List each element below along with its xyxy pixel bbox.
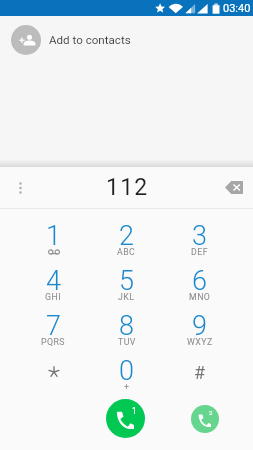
staticText: 112 [106, 174, 149, 201]
staticText: GHI [45, 292, 62, 302]
button[interactable]: 0 [90, 347, 163, 392]
staticText: Add to contacts [49, 33, 131, 47]
button[interactable]: 7 [17, 302, 90, 347]
staticText: 3 [192, 220, 207, 252]
staticText: DEF [191, 247, 208, 257]
staticText: PQRS [41, 337, 66, 347]
staticText: + [124, 382, 130, 392]
staticText: 2 [119, 220, 134, 252]
button[interactable]: Backspace [219, 172, 249, 202]
button[interactable]: Call with SIM 1 [106, 399, 145, 438]
button[interactable]: 1 [17, 212, 90, 257]
button[interactable]: 3 [163, 212, 236, 257]
staticText: WXYZ [187, 337, 213, 347]
button[interactable]: More options [6, 174, 34, 202]
staticText: ABC [117, 247, 136, 257]
staticText: 2 [209, 410, 213, 417]
staticText: 4 [46, 265, 61, 297]
staticText: 7 [46, 310, 61, 342]
staticText: MNO [189, 292, 211, 302]
staticText: 9 [192, 310, 207, 342]
staticText: 6 [192, 265, 207, 297]
button[interactable] [17, 347, 90, 392]
button[interactable]: 8 [90, 302, 163, 347]
staticText: JKL [118, 292, 135, 302]
staticText: 8 [119, 310, 134, 342]
staticText: 0 [119, 355, 134, 387]
staticText: TUV [118, 337, 136, 347]
button[interactable]: Add to contacts [0, 16, 253, 64]
button[interactable]: 6 [163, 257, 236, 302]
button[interactable]: 4 [17, 257, 90, 302]
staticText: 5 [119, 265, 134, 297]
button[interactable]: 5 [90, 257, 163, 302]
staticText: 1 [46, 220, 61, 252]
staticText: # [194, 362, 206, 383]
button[interactable]: Call with SIM 2 [191, 405, 219, 433]
staticText: 1 [132, 406, 137, 416]
button[interactable]: 9 [163, 302, 236, 347]
button[interactable]: 2 [90, 212, 163, 257]
staticText: 03:40 [223, 2, 251, 15]
button[interactable]: # [163, 347, 236, 392]
